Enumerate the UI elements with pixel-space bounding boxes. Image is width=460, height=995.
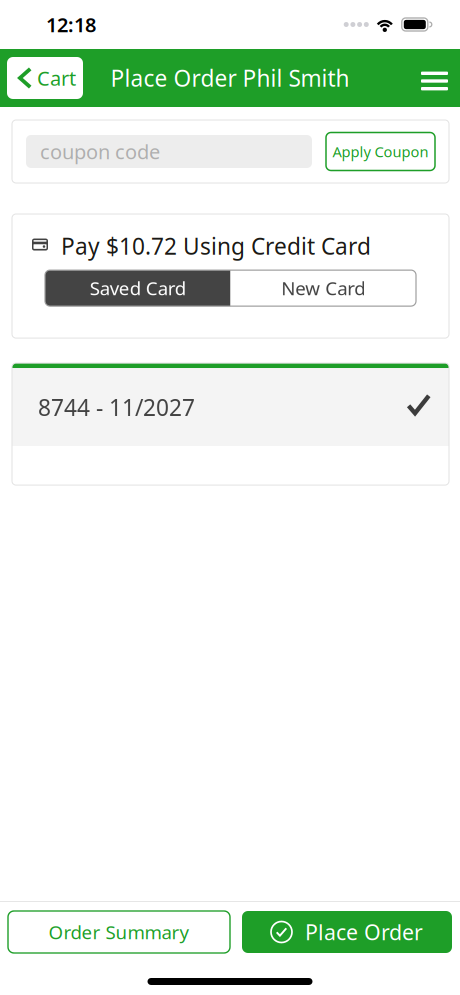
- button[interactable]: New Card: [230, 270, 416, 306]
- staticText: 8744 - 11/2027: [38, 392, 195, 422]
- staticText: Cart: [37, 65, 76, 91]
- button[interactable]: Cart: [7, 57, 83, 99]
- button[interactable]: Place Order: [242, 911, 452, 953]
- staticText: 12:18: [46, 11, 96, 38]
- staticText: Order Summary: [48, 920, 189, 944]
- button[interactable]: Menu: [409, 56, 448, 99]
- staticText: Saved Card: [90, 276, 186, 300]
- button[interactable]: Order Summary: [8, 911, 230, 953]
- staticText: Pay $10.72 Using Credit Card: [61, 231, 371, 261]
- staticText: Place Order: [305, 918, 423, 946]
- staticText: coupon code: [40, 138, 160, 165]
- button[interactable]: 8744 - 11/2027: [12, 368, 449, 446]
- button[interactable]: Apply Coupon: [326, 132, 435, 170]
- staticText: Apply Coupon: [332, 142, 428, 161]
- button[interactable]: Saved Card: [45, 270, 230, 306]
- staticText: New Card: [281, 276, 365, 300]
- staticText: Place Order Phil Smith: [110, 63, 349, 93]
